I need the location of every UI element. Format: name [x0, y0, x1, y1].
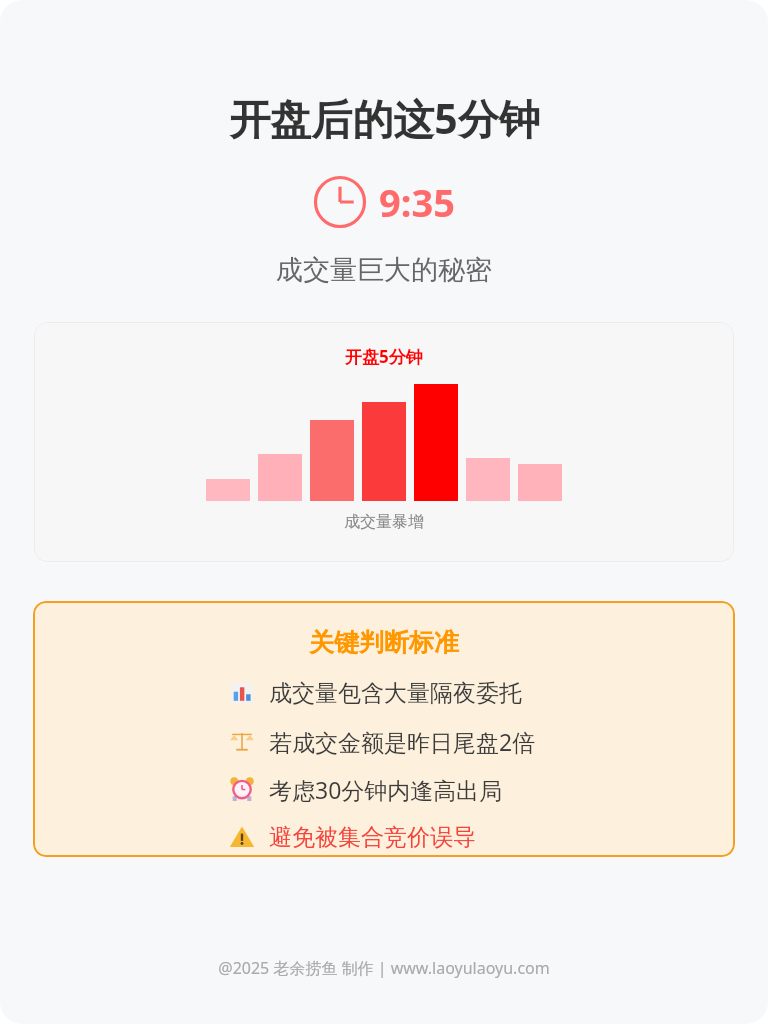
- staticText: 若成交金额是昨日尾盘2倍: [269, 726, 536, 757]
- other: Clock 9:35: [313, 175, 367, 229]
- staticText: 开盘5分钟: [345, 345, 423, 368]
- button[interactable]: 避免被集合竞价误导: [229, 818, 539, 856]
- staticText: 成交量包含大量隔夜委托: [269, 679, 522, 708]
- staticText: @2025 老余捞鱼 制作 | www.laoyulaoyu.com: [218, 957, 550, 979]
- staticText: 开盘后的这5分钟: [229, 90, 540, 146]
- button[interactable]: 考虑30分钟内逢高出局: [229, 770, 539, 808]
- button[interactable]: Clock 9:35: [309, 173, 459, 231]
- staticText: 关键判断标准: [309, 627, 459, 658]
- button[interactable]: 成交量包含大量隔夜委托: [229, 674, 539, 712]
- button[interactable]: 关键判断标准: [33, 601, 735, 857]
- staticText: 避免被集合竞价误导: [269, 823, 476, 852]
- staticText: 成交量巨大的秘密: [276, 253, 492, 287]
- button[interactable]: 若成交金额是昨日尾盘2倍: [229, 722, 539, 760]
- button[interactable]: 开盘5分钟: [34, 322, 734, 562]
- staticText: 考虑30分钟内逢高出局: [269, 774, 503, 805]
- staticText: 9:35: [379, 176, 455, 228]
- staticText: 成交量暴增: [344, 512, 424, 532]
